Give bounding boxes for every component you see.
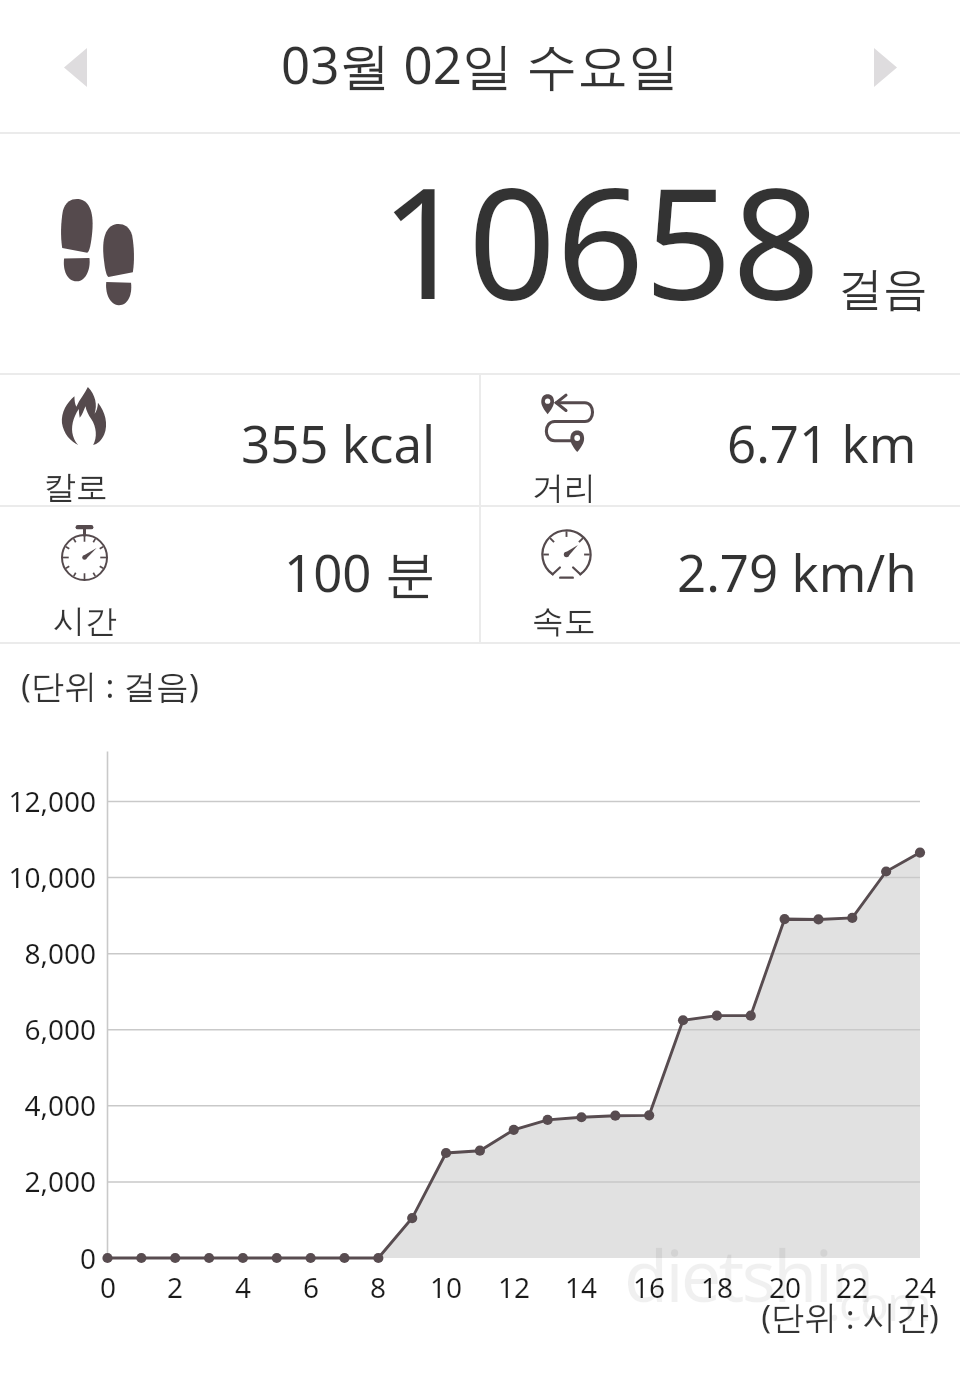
- staticText: 18: [677, 1268, 757, 1306]
- staticText: 시간: [25, 601, 145, 641]
- staticText: 100 분: [284, 537, 436, 607]
- staticText: 8: [338, 1268, 418, 1306]
- staticText: 거리: [504, 468, 624, 508]
- staticText: 2,000: [0, 1162, 96, 1200]
- staticText: 10658: [380, 134, 821, 344]
- staticText: 속도: [504, 601, 624, 641]
- staticText: 24: [880, 1268, 960, 1306]
- staticText: 4,000: [0, 1086, 96, 1124]
- staticText: 14: [541, 1268, 621, 1306]
- staticText: 걸음: [838, 261, 928, 318]
- staticText: 2.79 km/h: [677, 537, 917, 606]
- staticText: 10,000: [0, 858, 96, 896]
- button[interactable]: 거리: [481, 375, 960, 505]
- staticText: 0: [0, 1239, 96, 1277]
- staticText: 355 kcal: [241, 408, 436, 477]
- staticText: 칼로: [16, 467, 136, 507]
- staticText: 2: [135, 1268, 215, 1306]
- button[interactable]: 속도: [481, 507, 960, 642]
- staticText: 20: [745, 1268, 825, 1306]
- staticText: 03월 02일 수요일: [281, 29, 680, 99]
- staticText: (단위 : 걸음): [21, 663, 199, 708]
- staticText: 12: [474, 1268, 554, 1306]
- staticText: 16: [609, 1268, 689, 1306]
- staticText: 10: [406, 1268, 486, 1306]
- staticText: dietshin: [624, 1225, 872, 1323]
- staticText: 4: [203, 1268, 283, 1306]
- button[interactable]: 칼로: [0, 375, 479, 505]
- button[interactable]: Previous day: [41, 33, 109, 101]
- button[interactable]: 10658: [0, 134, 960, 375]
- staticText: 6,000: [0, 1010, 96, 1048]
- staticText: (단위 : 시간): [639, 1294, 939, 1339]
- staticText: 6.71 km: [727, 408, 917, 477]
- staticText: 22: [812, 1268, 892, 1306]
- button[interactable]: Next day: [851, 33, 919, 101]
- staticText: 8,000: [0, 934, 96, 972]
- staticText: 0: [68, 1268, 148, 1306]
- staticText: 6: [271, 1268, 351, 1306]
- button[interactable]: 시간: [0, 507, 479, 642]
- staticText: .com: [828, 1270, 930, 1335]
- staticText: 12,000: [0, 782, 96, 820]
